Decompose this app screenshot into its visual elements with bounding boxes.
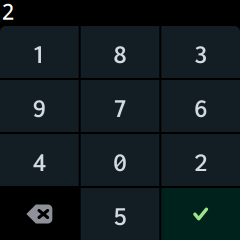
staticText: 0 [113, 147, 127, 177]
button[interactable]: 0 [81, 134, 159, 186]
button[interactable]: 8 [81, 26, 159, 78]
button[interactable]: 1 [0, 26, 79, 78]
staticText: 2 [194, 147, 208, 177]
staticText: 2 [2, 0, 14, 26]
button[interactable]: 5 [81, 188, 159, 240]
button[interactable]: 3 [161, 26, 240, 78]
staticText: 3 [194, 39, 208, 69]
button[interactable]: 2 [161, 134, 240, 186]
staticText: 1 [32, 39, 46, 69]
staticText: 6 [194, 93, 208, 123]
staticText: 5 [113, 201, 127, 231]
button[interactable]: Confirm [161, 188, 240, 240]
button[interactable]: 9 [0, 80, 79, 132]
button[interactable]: 6 [161, 80, 240, 132]
button[interactable]: 7 [81, 80, 159, 132]
staticText: 8 [113, 39, 127, 69]
staticText: 9 [32, 93, 46, 123]
staticText: 4 [32, 147, 46, 177]
button[interactable]: 4 [0, 134, 79, 186]
staticText: 7 [113, 93, 127, 123]
button[interactable]: Delete [0, 188, 79, 240]
